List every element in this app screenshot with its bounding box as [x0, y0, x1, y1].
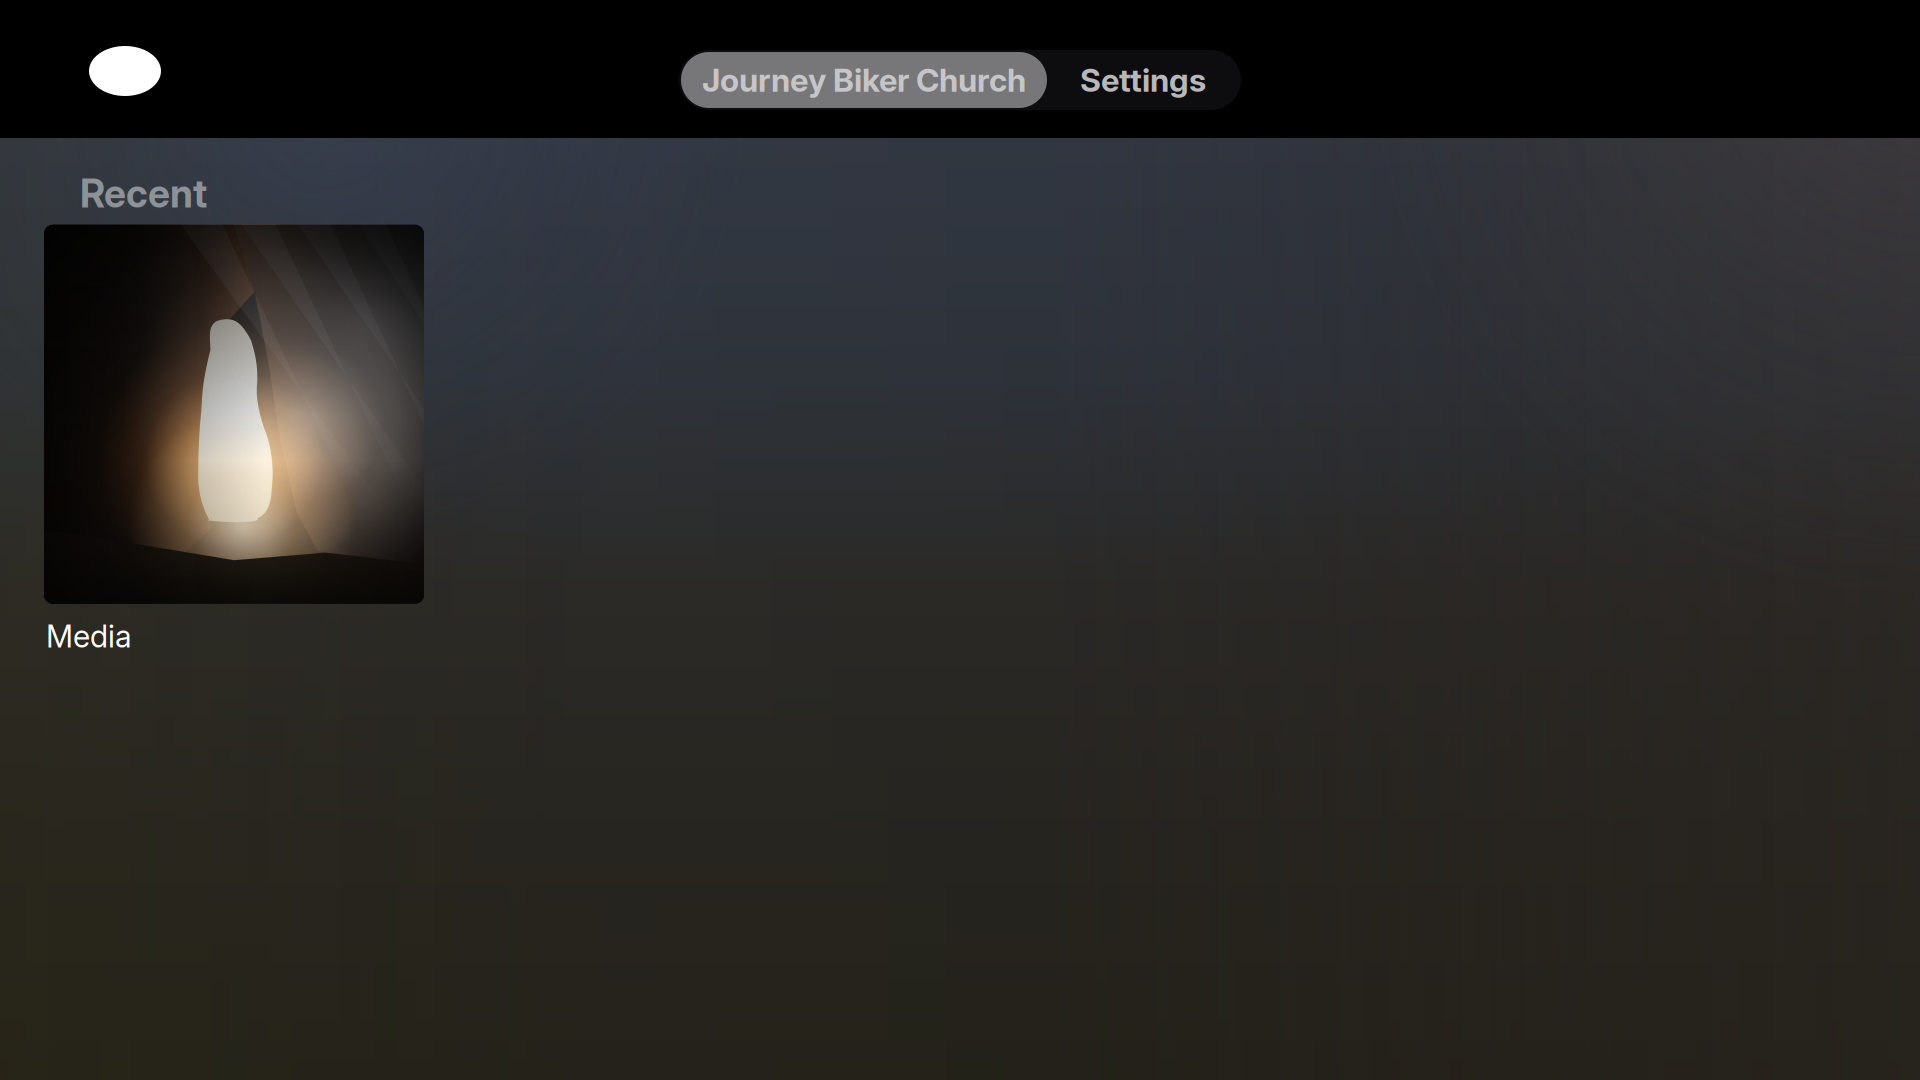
staticText: Recent	[80, 170, 207, 217]
button[interactable]: Settings	[1047, 52, 1239, 108]
staticText: Journey Biker Church	[702, 61, 1026, 99]
button[interactable]: Media	[44, 225, 424, 655]
button[interactable]: Account	[0, 0, 181, 138]
button[interactable]: Journey Biker Church	[681, 52, 1047, 108]
staticText: Settings	[1080, 61, 1206, 99]
staticText: Media	[46, 618, 132, 655]
